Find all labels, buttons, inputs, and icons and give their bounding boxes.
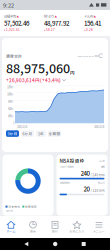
staticText: ▲	[93, 14, 96, 18]
staticText: 円	[70, 69, 75, 76]
staticText: 2025/12/26 09:22 時点	[77, 54, 98, 58]
button[interactable]: NYダウ	[44, 14, 74, 32]
staticText: ドル円	[84, 14, 93, 19]
staticText: 取引	[52, 229, 58, 233]
button[interactable]: ドル円	[84, 14, 106, 32]
staticText: 9:22	[3, 1, 14, 9]
staticText: / 240万円	[89, 173, 104, 177]
button[interactable]: 6か月	[21, 130, 34, 137]
staticText: 600万	[8, 107, 14, 111]
button[interactable]: ホーム	[53, 242, 57, 246]
staticText: 156.41	[84, 19, 101, 28]
button[interactable]: 1年	[36, 130, 46, 137]
staticText: ほか2件	[5, 209, 12, 212]
staticText: 48,977.92	[44, 19, 69, 28]
staticText: 日本株式	[8, 205, 20, 209]
staticText: 2025/11/26	[17, 125, 27, 129]
staticText: 資産合計	[6, 53, 22, 59]
staticText: 800万	[8, 100, 14, 103]
button[interactable]: 3か月	[6, 130, 19, 137]
staticText: 1年	[38, 131, 44, 136]
staticText: 400万	[8, 114, 14, 118]
staticText: / 120万円	[89, 189, 104, 193]
button[interactable]: お気に入り	[66, 216, 88, 237]
staticText: +1,021.61	[4, 27, 20, 32]
button[interactable]: 全期間	[48, 130, 61, 137]
staticText: 2025/12/26	[94, 125, 104, 129]
staticText: 88,975,060	[6, 59, 70, 77]
staticText: 資産	[30, 229, 36, 233]
button[interactable]: ホーム	[0, 216, 22, 237]
staticText: 2025年	[98, 159, 104, 162]
staticText: 全期間	[48, 131, 60, 136]
staticText: +0.28	[84, 27, 93, 32]
button[interactable]: 資産	[22, 216, 44, 237]
button[interactable]: 更新	[98, 53, 104, 59]
staticText: NISA投資枠	[59, 157, 84, 164]
staticText: 投資信託	[25, 205, 37, 209]
staticText: メニュー	[93, 229, 105, 233]
staticText: 残100万	[97, 181, 104, 184]
staticText: 3か月	[7, 131, 17, 136]
staticText: ホーム	[6, 229, 15, 233]
staticText: つみたて投資枠	[59, 165, 73, 169]
staticText: お気に入り	[69, 229, 84, 233]
staticText: 成長投資枠	[59, 181, 69, 184]
staticText: +58.17	[44, 27, 55, 32]
staticText: 0	[13, 121, 14, 125]
staticText: +26,903,614円(+43.4%)	[6, 77, 61, 84]
staticText: 6か月	[22, 131, 32, 136]
staticText: 240	[80, 168, 89, 177]
button[interactable]: メニュー	[88, 216, 110, 237]
button[interactable]: 戻る	[24, 242, 29, 246]
staticText: 20	[83, 184, 89, 193]
staticText: 1000万	[7, 92, 14, 96]
button[interactable]: 履歴	[82, 242, 86, 246]
staticText: 57,502.46	[4, 19, 29, 28]
button[interactable]: 日経平均	[4, 14, 34, 32]
button[interactable]: 取引	[44, 216, 66, 237]
staticText: ▲	[16, 14, 19, 18]
staticText: NYダウ	[44, 14, 54, 19]
staticText: 日経平均	[4, 14, 16, 19]
staticText: 1200万	[7, 85, 14, 89]
staticText: 満額	[100, 165, 104, 169]
staticText: ▲	[54, 14, 57, 18]
